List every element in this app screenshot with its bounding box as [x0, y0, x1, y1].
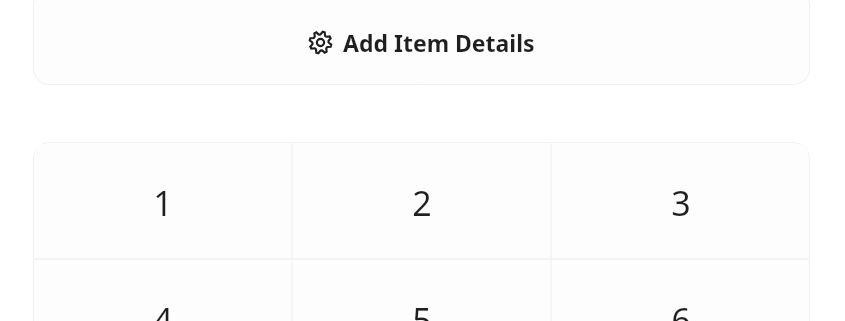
button[interactable]: 2: [292, 142, 551, 259]
button[interactable]: 4: [33, 259, 292, 321]
staticText: 3: [671, 180, 691, 226]
staticText: 2: [412, 180, 432, 226]
staticText: 4: [153, 297, 173, 321]
button[interactable]: 3: [551, 142, 810, 259]
button[interactable]: 6: [551, 259, 810, 321]
staticText: 1: [153, 180, 173, 226]
button[interactable]: Settings: [33, 0, 810, 85]
button[interactable]: 5: [292, 259, 551, 321]
button[interactable]: 1: [33, 142, 292, 259]
staticText: Add Item Details: [343, 27, 535, 58]
staticText: 5: [412, 297, 432, 321]
staticText: 6: [671, 297, 691, 321]
other: Settings: [308, 30, 333, 55]
